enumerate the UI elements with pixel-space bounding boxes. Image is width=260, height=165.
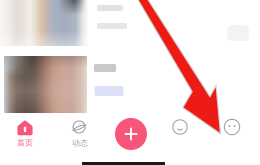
staticText: 首页: [17, 138, 33, 148]
button[interactable]: Messages: [157, 112, 203, 142]
button[interactable]: Add: [114, 117, 148, 151]
button[interactable]: 动态: [55, 118, 105, 150]
staticText: 动态: [72, 138, 88, 148]
button[interactable]: Profile: [209, 112, 255, 142]
button[interactable]: 首页: [0, 118, 50, 150]
